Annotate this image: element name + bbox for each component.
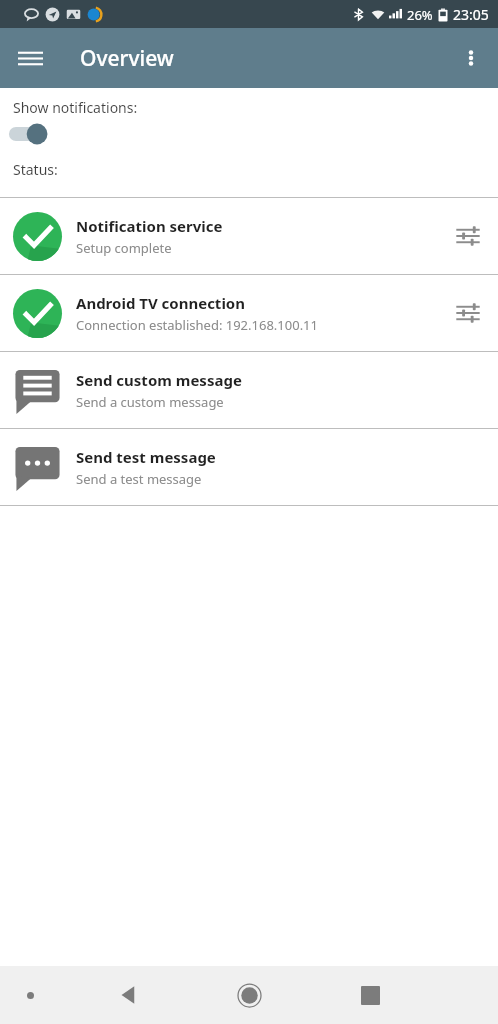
button[interactable]: Recent apps	[310, 966, 431, 1024]
staticText: Connection established: 192.168.100.11	[76, 316, 318, 334]
staticText: Status:	[13, 160, 58, 179]
button[interactable]: More options	[447, 34, 495, 82]
button[interactable]: Send custom message	[0, 352, 498, 428]
button[interactable]: Home	[189, 966, 310, 1024]
staticText: Overview	[80, 44, 174, 73]
button[interactable]: Show notifications toggle	[8, 118, 64, 150]
button[interactable]: Keyboard switcher	[14, 979, 46, 1011]
staticText: Show notifications:	[13, 98, 138, 117]
button[interactable]: Android TV connection	[0, 275, 498, 351]
button[interactable]: Notification service	[0, 198, 498, 274]
staticText: Send custom message	[76, 370, 242, 390]
button[interactable]: Open navigation drawer	[6, 34, 54, 82]
staticText: 26%	[407, 6, 433, 24]
staticText: Android TV connection	[76, 293, 245, 313]
button[interactable]: Settings	[446, 214, 490, 258]
staticText: 23:05	[453, 5, 489, 24]
button[interactable]: Settings	[446, 291, 490, 335]
staticText: Send a test message	[76, 470, 202, 488]
button[interactable]: Back	[68, 966, 189, 1024]
staticText: Send a custom message	[76, 393, 224, 411]
staticText: Notification service	[76, 216, 223, 236]
staticText: Send test message	[76, 447, 216, 467]
button[interactable]: Send test message	[0, 429, 498, 505]
staticText: Setup complete	[76, 239, 172, 257]
